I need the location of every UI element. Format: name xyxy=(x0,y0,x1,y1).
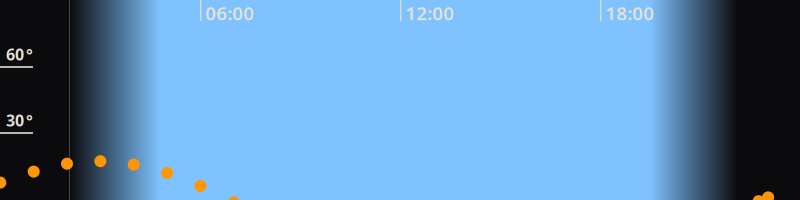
staticText: 06:00 xyxy=(205,0,254,25)
staticText: 30 xyxy=(6,110,24,131)
staticText: 60 xyxy=(6,44,24,65)
staticText: 18:00 xyxy=(605,0,654,25)
staticText: ° xyxy=(26,44,33,65)
staticText: ° xyxy=(26,110,33,131)
staticText: 12:00 xyxy=(405,0,454,25)
